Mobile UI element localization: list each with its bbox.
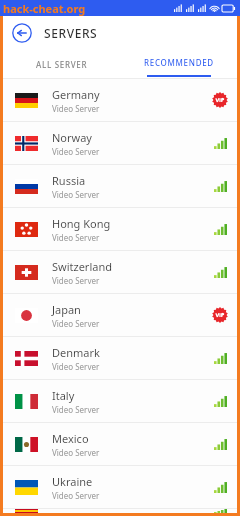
staticText: Video Server [52, 189, 100, 200]
button[interactable]: Italy [3, 380, 237, 422]
staticText: Russia [52, 173, 86, 188]
staticText: Hong Kong [52, 216, 111, 231]
staticText: Norway [52, 130, 92, 145]
staticText: Video Server [52, 490, 100, 501]
staticText: Video Server [52, 318, 100, 329]
staticText: Mexico [52, 431, 89, 446]
staticText: Video Server [52, 103, 100, 114]
button[interactable]: Switzerland [3, 251, 237, 293]
staticText: hack-cheat.org [3, 1, 86, 16]
staticText: Denmark [52, 345, 100, 360]
button[interactable]: Denmark [3, 337, 237, 379]
staticText: Video Server [52, 361, 100, 372]
button[interactable]: Norway [3, 122, 237, 164]
button[interactable]: ALL SERVER [3, 50, 120, 78]
staticText: Italy [52, 388, 75, 403]
staticText: Video Server [52, 232, 100, 243]
staticText: Video Server [52, 146, 100, 157]
staticText: Video Server [52, 447, 100, 458]
button[interactable]: Russia [3, 165, 237, 207]
staticText: Germany [52, 87, 100, 102]
staticText: Japan [52, 302, 81, 317]
staticText: RECOMMENDED [144, 57, 214, 68]
button[interactable]: Hong Kong [3, 208, 237, 250]
button[interactable]: Back [12, 23, 32, 43]
button[interactable]: Japan [3, 294, 237, 336]
button[interactable]: Spain [3, 509, 237, 513]
button[interactable]: Mexico [3, 423, 237, 465]
staticText: Video Server [52, 275, 100, 286]
staticText: SERVERS [44, 25, 98, 41]
staticText: Ukraine [52, 474, 93, 489]
staticText: Video Server [52, 404, 100, 415]
button[interactable]: RECOMMENDED [120, 50, 237, 78]
button[interactable]: Germany [3, 79, 237, 121]
button[interactable]: Ukraine [3, 466, 237, 508]
staticText: Switzerland [52, 259, 112, 274]
staticText: ALL SERVER [36, 59, 88, 70]
